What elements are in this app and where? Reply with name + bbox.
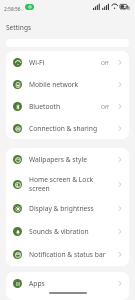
button[interactable]: Mobile network (6, 73, 129, 95)
staticText: Bluetooth (29, 102, 61, 111)
staticText: Off (101, 59, 109, 66)
staticText: Sounds & vibration (29, 227, 89, 236)
button[interactable]: Bluetooth (6, 95, 129, 117)
button[interactable]: Notification & status bar (6, 243, 129, 266)
staticText: Off (101, 103, 109, 110)
staticText: Settings (6, 23, 32, 32)
staticText: Mobile network (29, 80, 79, 89)
staticText: Home screen & Lock screen (29, 175, 94, 193)
button[interactable]: Connection & sharing (6, 117, 129, 139)
button[interactable]: Sounds & vibration (6, 220, 129, 243)
staticText: 52% (120, 4, 131, 11)
staticText: Connection & sharing (29, 124, 98, 133)
staticText: Apps (29, 279, 45, 288)
button[interactable]: Apps (6, 272, 129, 295)
button[interactable]: Wallpapers & style (6, 148, 129, 171)
staticText: Wi-Fi (29, 58, 45, 67)
button[interactable]: Wi-Fi (6, 51, 129, 73)
staticText: Display & brightness (29, 204, 94, 213)
button[interactable]: Display & brightness (6, 197, 129, 220)
staticText: 2:58:56 (4, 6, 21, 13)
staticText: Wallpapers & style (29, 155, 87, 164)
button[interactable]: Home screen & Lock screen (6, 171, 129, 197)
staticText: Notification & status bar (29, 250, 106, 259)
